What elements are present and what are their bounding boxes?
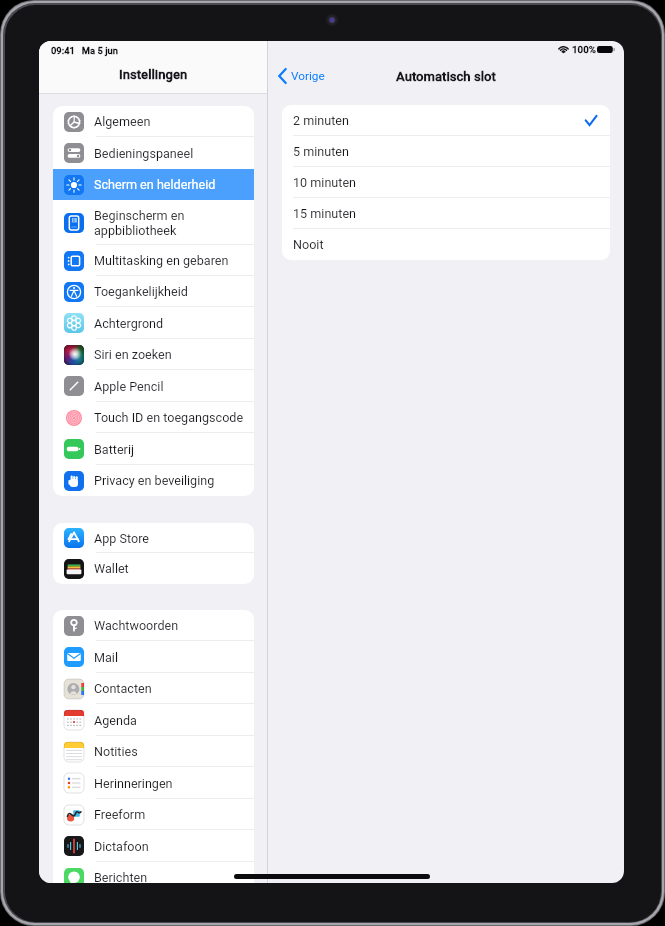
button[interactable]: 5 minuten xyxy=(282,136,610,167)
staticText: 09:41 Ma 5 jun xyxy=(51,45,118,56)
staticText: Achtergrond xyxy=(94,316,164,331)
staticText: 100% xyxy=(572,44,596,55)
staticText: Automatisch slot xyxy=(396,69,496,84)
staticText: Agenda xyxy=(94,713,137,728)
staticText: 5 minuten xyxy=(293,144,349,159)
button[interactable]: Contacten xyxy=(53,673,254,704)
button[interactable]: Beginscherm en appbibliotheek xyxy=(53,200,254,245)
staticText: Vorige xyxy=(291,69,325,83)
button[interactable]: Notities xyxy=(53,736,254,767)
button[interactable]: Bedieningspaneel xyxy=(53,137,254,169)
button[interactable]: Dictafoon xyxy=(53,830,254,862)
button[interactable]: Berichten xyxy=(53,862,254,883)
staticText: Mail xyxy=(94,650,118,665)
button[interactable]: Toegankelijkheid xyxy=(53,276,254,307)
button[interactable]: Freeform xyxy=(53,799,254,830)
staticText: Privacy en beveiliging xyxy=(94,473,215,488)
button[interactable]: Nooit xyxy=(282,229,610,260)
staticText: Beginscherm en appbibliotheek xyxy=(94,208,185,238)
staticText: App Store xyxy=(94,531,149,546)
button[interactable]: Apple Pencil xyxy=(53,370,254,402)
staticText: Touch ID en toegangscode xyxy=(94,410,244,425)
button[interactable]: 15 minuten xyxy=(282,198,610,229)
button[interactable]: Multitasking en gebaren xyxy=(53,245,254,276)
staticText: 2 minuten xyxy=(293,113,349,128)
button[interactable]: 10 minuten xyxy=(282,167,610,198)
staticText: Siri en zoeken xyxy=(94,347,172,362)
staticText: Wachtwoorden xyxy=(94,618,179,633)
button[interactable]: Batterij xyxy=(53,433,254,465)
staticText: Berichten xyxy=(94,870,148,883)
staticText: Instellingen xyxy=(119,67,188,82)
button[interactable]: Achtergrond xyxy=(53,307,254,339)
button[interactable]: Scherm en helderheid xyxy=(53,169,254,200)
button[interactable]: Wallet xyxy=(53,553,254,584)
staticText: Dictafoon xyxy=(94,839,149,854)
button[interactable]: Privacy en beveiliging xyxy=(53,465,254,496)
staticText: Apple Pencil xyxy=(94,379,164,394)
staticText: Nooit xyxy=(293,237,324,252)
button[interactable]: Touch ID en toegangscode xyxy=(53,402,254,433)
button[interactable]: Herinneringen xyxy=(53,767,254,799)
staticText: 15 minuten xyxy=(293,206,357,221)
button[interactable]: 2 minuten xyxy=(282,105,610,136)
staticText: Bedieningspaneel xyxy=(94,146,194,161)
staticText: 10 minuten xyxy=(293,175,357,190)
staticText: Contacten xyxy=(94,681,152,696)
staticText: Algemeen xyxy=(94,114,151,129)
button[interactable]: App Store xyxy=(53,523,254,553)
button[interactable]: Algemeen xyxy=(53,106,254,137)
staticText: Multitasking en gebaren xyxy=(94,253,229,268)
staticText: Wallet xyxy=(94,561,129,576)
staticText: Scherm en helderheid xyxy=(94,177,216,192)
button[interactable]: Siri en zoeken xyxy=(53,339,254,370)
staticText: Freeform xyxy=(94,807,146,822)
staticText: Notities xyxy=(94,744,138,759)
button[interactable]: Vorige, terug xyxy=(268,64,335,88)
button[interactable]: Wachtwoorden xyxy=(53,610,254,641)
staticText: Toegankelijkheid xyxy=(94,284,188,299)
button[interactable]: Mail xyxy=(53,641,254,673)
staticText: Batterij xyxy=(94,442,134,457)
staticText: Herinneringen xyxy=(94,776,173,791)
button[interactable]: Agenda xyxy=(53,704,254,736)
